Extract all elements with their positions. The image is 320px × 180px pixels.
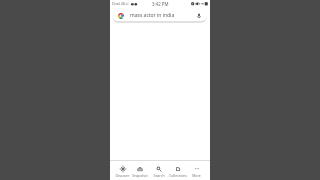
staticText: Snapshot (132, 173, 148, 178)
button[interactable]: More (187, 161, 206, 180)
button[interactable]: Discover (113, 161, 131, 180)
button[interactable]: Collections (168, 161, 187, 180)
staticText: 3:42 PM (152, 1, 169, 7)
button[interactable]: Search (149, 161, 168, 180)
button[interactable]: mass actor in india (118, 10, 202, 21)
staticText: Collections (169, 173, 187, 178)
staticText: Dual 4G+l (112, 1, 129, 6)
button[interactable]: Snapshot (131, 161, 149, 180)
staticText: mass actor in india (130, 12, 175, 19)
other: Voice search (196, 13, 202, 19)
staticText: More (192, 173, 201, 178)
staticText: Search (153, 173, 165, 178)
staticText: Discover (115, 173, 130, 178)
